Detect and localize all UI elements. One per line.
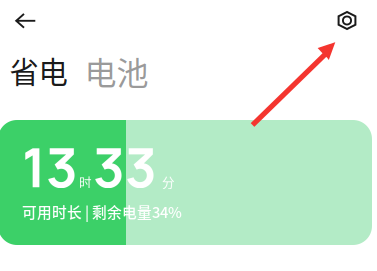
button[interactable]: 电池 bbox=[84, 46, 148, 92]
staticText: 13 bbox=[22, 129, 78, 204]
staticText: 33 bbox=[93, 129, 157, 204]
button[interactable]: Settings bbox=[338, 11, 356, 30]
staticText: 时 bbox=[79, 173, 92, 191]
staticText: 可用时长 | 剩余电量34% bbox=[22, 201, 182, 222]
button[interactable]: 省电 bbox=[9, 49, 67, 92]
button[interactable]: Back bbox=[15, 13, 36, 28]
staticText: 分 bbox=[162, 173, 175, 191]
staticText: 电池 bbox=[84, 48, 148, 94]
staticText: 省电 bbox=[9, 49, 67, 92]
